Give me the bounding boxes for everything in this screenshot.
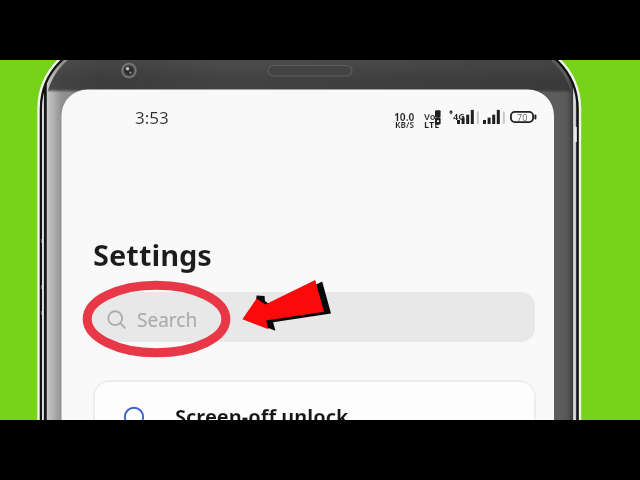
staticText: Search [137, 307, 198, 333]
button[interactable]: Search [91, 292, 535, 342]
staticText: 3:53 [135, 106, 169, 129]
staticText: Settings [93, 235, 212, 274]
button[interactable]: Screen-off unlock [93, 380, 536, 446]
staticText: 4G [453, 110, 465, 123]
staticText: Vo [424, 110, 436, 123]
staticText: 70 [517, 111, 528, 123]
staticText: LTE [424, 118, 440, 131]
staticText: 10.0 [394, 110, 415, 124]
staticText: Screen-off unlock [175, 403, 349, 430]
staticText: KB/S [395, 119, 415, 130]
